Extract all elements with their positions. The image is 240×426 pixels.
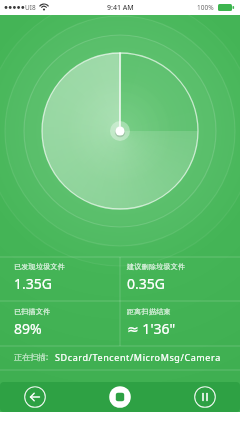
staticText: 1.35G bbox=[14, 274, 52, 293]
button[interactable] bbox=[23, 385, 47, 409]
staticText: 距离扫描结束 bbox=[127, 307, 171, 316]
staticText: 已扫描文件 bbox=[14, 307, 51, 316]
staticText: UI8 bbox=[25, 3, 36, 12]
staticText: 已发现垃圾文件 bbox=[14, 262, 66, 271]
staticText: 9:41 AM bbox=[107, 3, 134, 13]
staticText: 89% bbox=[14, 319, 42, 338]
button[interactable] bbox=[193, 385, 217, 409]
staticText: 正在扫描: bbox=[14, 351, 49, 362]
staticText: ≈ 1'36" bbox=[127, 319, 176, 338]
staticText: 建议删除垃圾文件 bbox=[127, 262, 186, 271]
staticText: 100% bbox=[197, 3, 214, 12]
staticText: 0.35G bbox=[127, 274, 165, 293]
button[interactable] bbox=[108, 385, 132, 409]
staticText: SDcard/Tencent/MicroMsg/Camera bbox=[55, 351, 221, 363]
